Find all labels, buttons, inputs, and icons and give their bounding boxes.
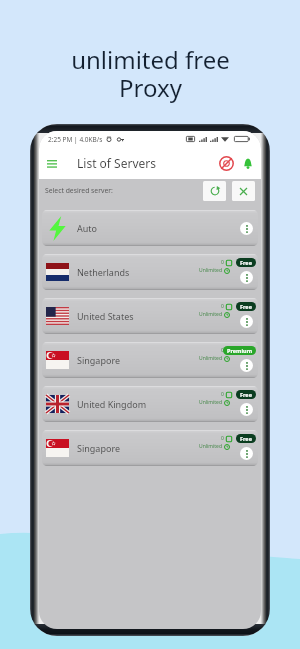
button[interactable]: Free	[240, 258, 252, 267]
staticText: Premium	[227, 347, 252, 354]
button[interactable]: Remove ads	[217, 154, 236, 173]
button[interactable]: More options	[240, 403, 253, 416]
button[interactable]: More options	[240, 271, 253, 284]
staticText: Unlimited	[199, 443, 222, 450]
staticText: 2:25 PM | 4.0KB/s	[48, 135, 103, 144]
staticText: 0	[221, 347, 224, 354]
button[interactable]: Notifications	[238, 154, 257, 173]
button[interactable]: United Kingdom	[42, 386, 258, 422]
button[interactable]: Refresh	[203, 181, 226, 201]
staticText: Select desired server:	[45, 186, 113, 195]
staticText: Netherlands	[77, 266, 130, 278]
button[interactable]: Singapore	[42, 342, 258, 378]
staticText: Unlimited	[199, 399, 222, 406]
staticText: 0	[221, 435, 224, 442]
staticText: Auto	[77, 222, 98, 234]
staticText: United Kingdom	[77, 398, 147, 410]
button[interactable]: More options	[240, 359, 253, 372]
staticText: 0	[221, 259, 224, 266]
button[interactable]: Netherlands	[42, 254, 258, 290]
button[interactable]: Singapore	[42, 430, 258, 466]
button[interactable]: United States	[42, 298, 258, 334]
staticText: Free	[240, 391, 252, 398]
button[interactable]: Free	[240, 302, 252, 311]
button[interactable]: Free	[240, 390, 252, 399]
button[interactable]: More options	[240, 222, 253, 235]
staticText: Unlimited	[199, 355, 222, 362]
button[interactable]: Free	[240, 434, 252, 443]
staticText: Unlimited	[199, 311, 222, 318]
staticText: United States	[77, 310, 134, 322]
staticText: Singapore	[77, 442, 121, 454]
button[interactable]: Open navigation menu	[43, 154, 61, 172]
button[interactable]: Close	[232, 181, 255, 201]
staticText: Unlimited	[199, 267, 222, 274]
staticText: 0	[221, 391, 224, 398]
staticText: Free	[240, 435, 252, 442]
staticText: Free	[240, 303, 252, 310]
button[interactable]: More options	[240, 315, 253, 328]
staticText: unlimited free Proxy	[71, 43, 230, 104]
button[interactable]: Premium	[227, 346, 252, 355]
staticText: Singapore	[77, 354, 121, 366]
button[interactable]: More options	[240, 447, 253, 460]
staticText: 0	[221, 303, 224, 310]
staticText: Free	[240, 259, 252, 266]
staticText: List of Servers	[77, 155, 156, 171]
button[interactable]: Auto	[42, 210, 258, 246]
